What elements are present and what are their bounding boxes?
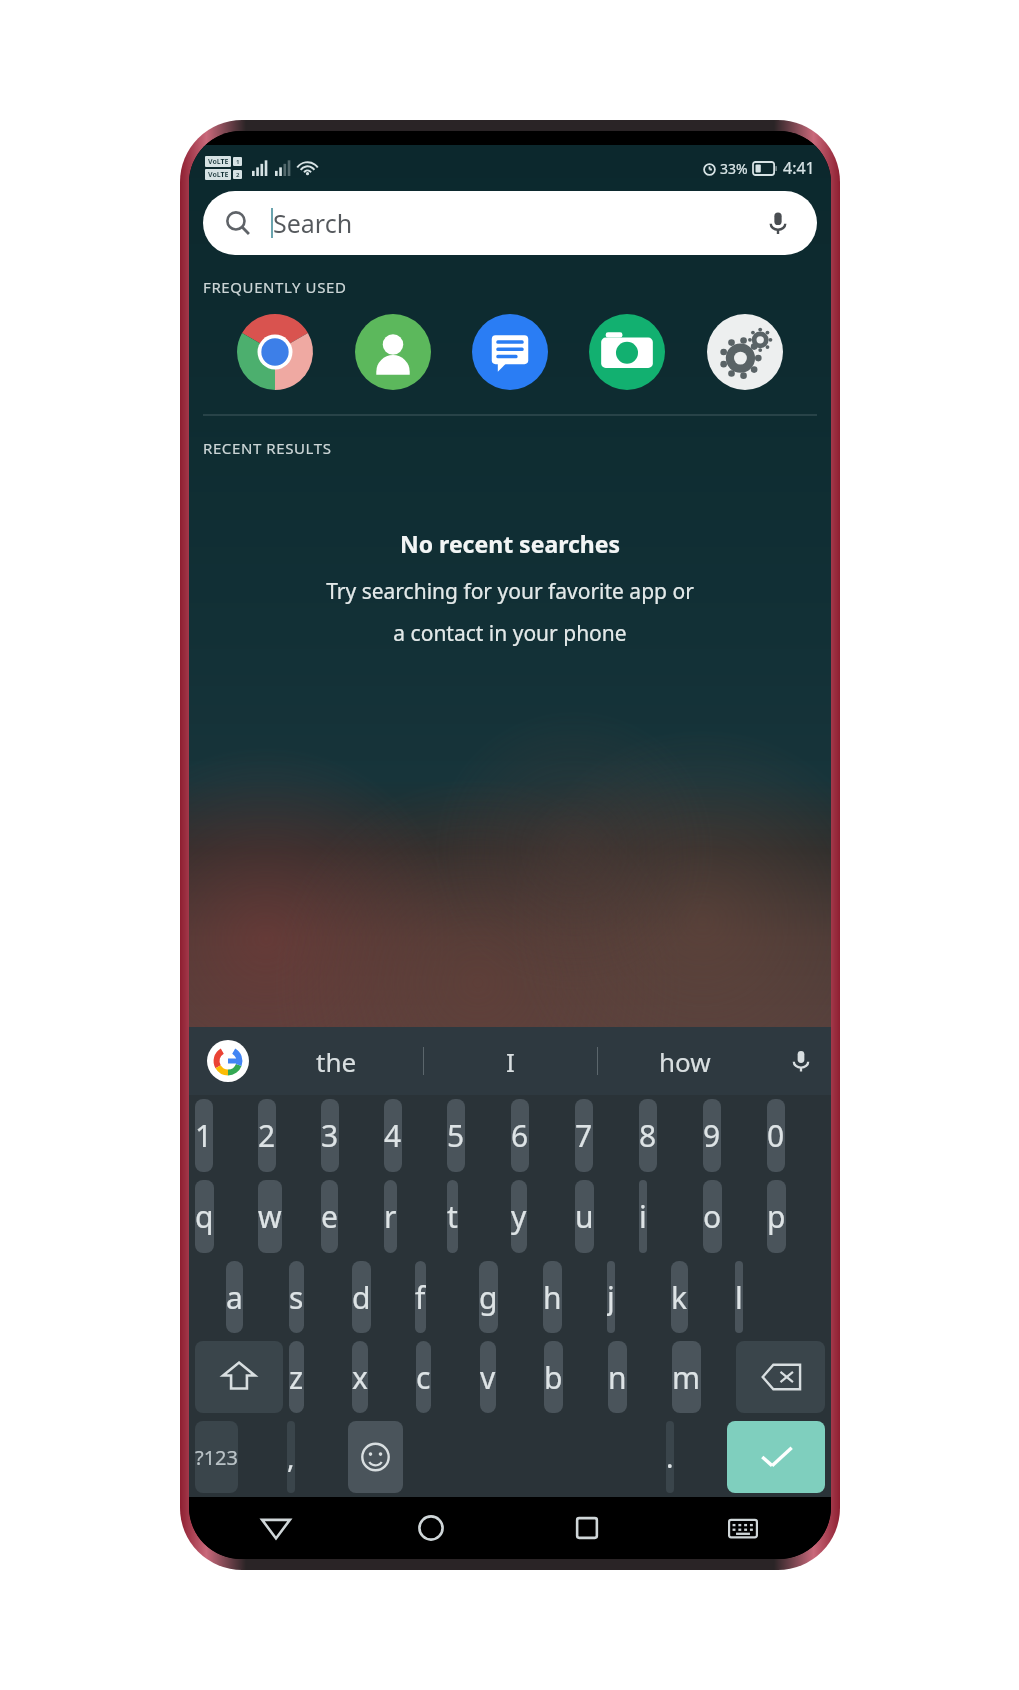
staticText: I xyxy=(506,1044,515,1079)
button[interactable]: Shift xyxy=(195,1341,283,1413)
button[interactable]: Chrome xyxy=(234,311,316,393)
staticText: 5 xyxy=(447,1115,465,1156)
button[interactable]: Back xyxy=(247,1499,305,1557)
button[interactable]: f xyxy=(415,1261,426,1333)
button[interactable]: m xyxy=(672,1341,701,1413)
button[interactable]: 4 xyxy=(384,1099,402,1172)
button[interactable]: n xyxy=(608,1341,627,1413)
button[interactable]: j xyxy=(607,1261,615,1333)
button[interactable]: Emoji xyxy=(348,1421,403,1493)
staticText: a contact in your phone xyxy=(393,619,627,648)
staticText: ?123 xyxy=(195,1444,238,1471)
staticText: . xyxy=(666,1438,674,1476)
staticText: 9 xyxy=(703,1115,721,1156)
staticText: Try searching for your favorite app or xyxy=(326,577,694,606)
button[interactable]: Recents xyxy=(558,1499,616,1557)
button[interactable]: Contacts xyxy=(352,311,434,393)
button[interactable]: 8 xyxy=(639,1099,657,1172)
button[interactable]: x xyxy=(352,1341,368,1413)
staticText: 3 xyxy=(321,1115,339,1156)
staticText: z xyxy=(289,1357,304,1398)
staticText: u xyxy=(575,1196,594,1237)
button[interactable]: 5 xyxy=(447,1099,465,1172)
button[interactable]: I xyxy=(424,1027,597,1095)
staticText: 2 xyxy=(258,1115,276,1156)
staticText: l xyxy=(735,1277,743,1318)
staticText: p xyxy=(767,1196,786,1237)
staticText: 1 xyxy=(195,1115,213,1156)
staticText: m xyxy=(672,1357,701,1398)
staticText: f xyxy=(415,1277,426,1318)
button[interactable]: p xyxy=(767,1180,786,1253)
staticText: i xyxy=(639,1196,647,1237)
button[interactable]: v xyxy=(480,1341,496,1413)
button[interactable]: Voice input xyxy=(771,1027,831,1095)
staticText: VoLTE xyxy=(208,170,229,180)
staticText: 4 xyxy=(384,1115,402,1156)
staticText: o xyxy=(703,1196,722,1237)
button[interactable]: h xyxy=(543,1261,562,1333)
button[interactable]: Hide keyboard xyxy=(714,1499,772,1557)
button[interactable]: 6 xyxy=(511,1099,529,1172)
button[interactable]: a xyxy=(226,1261,243,1333)
button[interactable]: z xyxy=(289,1341,304,1413)
button[interactable]: Messages xyxy=(469,311,551,393)
button[interactable]: 3 xyxy=(321,1099,339,1172)
button[interactable]: . xyxy=(666,1421,674,1493)
button[interactable]: 7 xyxy=(575,1099,593,1172)
staticText: y xyxy=(511,1196,527,1237)
button[interactable]: , xyxy=(287,1421,295,1493)
staticText: w xyxy=(258,1196,282,1237)
button[interactable]: c xyxy=(416,1341,431,1413)
staticText: No recent searches xyxy=(400,528,621,559)
button[interactable]: s xyxy=(289,1261,304,1333)
button[interactable]: Camera xyxy=(586,311,668,393)
button[interactable]: 2 xyxy=(258,1099,276,1172)
staticText: c xyxy=(416,1357,431,1398)
button[interactable]: r xyxy=(384,1180,397,1253)
staticText: r xyxy=(384,1196,397,1237)
staticText: v xyxy=(480,1357,496,1398)
staticText: k xyxy=(671,1277,688,1318)
button[interactable]: Search xyxy=(203,191,817,255)
button[interactable]: e xyxy=(321,1180,338,1253)
staticText: Search xyxy=(273,206,353,240)
button[interactable]: g xyxy=(479,1261,498,1333)
button[interactable]: 0 xyxy=(767,1099,785,1172)
button[interactable]: how xyxy=(598,1027,771,1095)
staticText: a xyxy=(226,1277,243,1318)
staticText: h xyxy=(543,1277,562,1318)
button[interactable]: 9 xyxy=(703,1099,721,1172)
button[interactable]: t xyxy=(447,1180,458,1253)
button[interactable]: d xyxy=(352,1261,371,1333)
button[interactable]: o xyxy=(703,1180,722,1253)
staticText: n xyxy=(608,1357,627,1398)
button[interactable]: Enter xyxy=(727,1421,825,1493)
button[interactable]: Voice search xyxy=(761,206,795,240)
button[interactable]: Google xyxy=(207,1040,249,1082)
staticText: d xyxy=(352,1277,371,1318)
button[interactable]: Settings xyxy=(704,311,786,393)
staticText: 33% xyxy=(720,159,748,178)
staticText: FREQUENTLY USED xyxy=(203,277,347,297)
button[interactable]: k xyxy=(671,1261,688,1333)
button[interactable]: l xyxy=(735,1261,743,1333)
button[interactable]: w xyxy=(258,1180,282,1253)
button[interactable]: i xyxy=(639,1180,647,1253)
staticText: 0 xyxy=(767,1115,785,1156)
staticText: x xyxy=(352,1357,368,1398)
staticText: t xyxy=(447,1196,458,1237)
button[interactable]: Home xyxy=(402,1499,460,1557)
button[interactable]: Backspace xyxy=(736,1341,825,1413)
button[interactable]: the xyxy=(249,1027,423,1095)
staticText: s xyxy=(289,1277,304,1318)
staticText: e xyxy=(321,1196,338,1237)
button[interactable]: ?123 xyxy=(195,1421,238,1493)
button[interactable]: b xyxy=(544,1341,563,1413)
staticText: q xyxy=(195,1196,214,1237)
staticText: 7 xyxy=(575,1115,593,1156)
button[interactable]: q xyxy=(195,1180,214,1253)
button[interactable]: u xyxy=(575,1180,594,1253)
button[interactable]: 1 xyxy=(195,1099,213,1172)
button[interactable]: y xyxy=(511,1180,527,1253)
